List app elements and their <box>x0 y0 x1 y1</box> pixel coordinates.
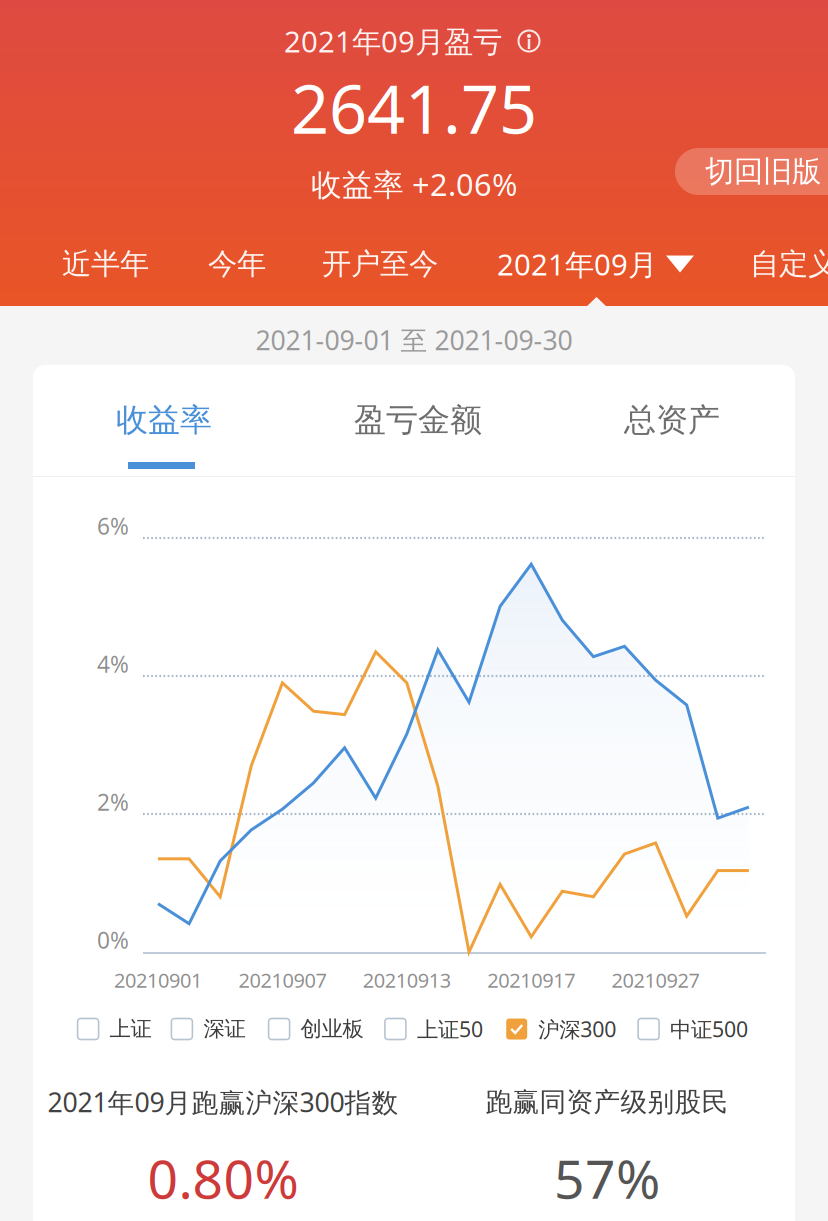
staticText: 2021年09月 <box>497 244 657 283</box>
staticText: 切回旧版 <box>705 153 821 189</box>
button[interactable]: 切回旧版 <box>675 148 828 195</box>
staticText: 上证50 <box>417 1015 483 1043</box>
button[interactable]: 近半年 <box>62 233 149 295</box>
staticText: 2021-09-01 至 2021-09-30 <box>255 322 572 358</box>
button[interactable]: 盈亏金额 <box>287 365 541 477</box>
staticText: 开户至今 <box>322 246 438 282</box>
button[interactable]: 今年 <box>208 233 266 295</box>
staticText: 2021年09月跑赢沪深300指数 <box>47 1084 398 1120</box>
button[interactable]: 开户至今 <box>322 233 438 295</box>
button[interactable]: 沪深300 <box>506 1009 616 1049</box>
staticText: 57% <box>554 1143 660 1213</box>
staticText: 自定义 <box>750 246 828 282</box>
staticText: 沪深300 <box>538 1015 616 1043</box>
staticText: 近半年 <box>62 246 149 282</box>
staticText: 总资产 <box>624 400 720 440</box>
staticText: 收益率 <box>116 400 212 440</box>
button[interactable]: 收益率 <box>33 365 287 477</box>
staticText: 0% <box>97 925 129 955</box>
staticText: 6% <box>97 511 129 541</box>
staticText: 4% <box>97 649 129 679</box>
staticText: 20210927 <box>612 967 700 993</box>
button[interactable]: 深证 <box>171 1009 245 1049</box>
staticText: 2021年09月盈亏 <box>284 21 502 60</box>
button[interactable]: 总资产 <box>541 365 795 477</box>
button[interactable]: 自定义 <box>750 233 828 295</box>
staticText: 中证500 <box>670 1015 748 1043</box>
staticText: 2641.75 <box>291 64 537 152</box>
staticText: 创业板 <box>301 1016 364 1042</box>
staticText: 跑赢同资产级别股民 <box>485 1086 728 1118</box>
staticText: 20210917 <box>487 967 575 993</box>
staticText: 20210907 <box>238 967 326 993</box>
staticText: 上证 <box>110 1016 152 1042</box>
button[interactable]: 中证500 <box>638 1009 748 1049</box>
staticText: 20210913 <box>363 967 451 993</box>
staticText: 0.80% <box>147 1143 298 1213</box>
staticText: 今年 <box>208 246 266 282</box>
staticText: 2% <box>97 787 129 817</box>
button[interactable]: 上证50 <box>385 1009 483 1049</box>
staticText: 20210901 <box>114 967 202 993</box>
button[interactable]: 上证 <box>78 1009 152 1049</box>
button[interactable]: 2021年09月 <box>497 233 694 295</box>
staticText: 收益率 +2.06% <box>311 164 517 204</box>
staticText: 深证 <box>203 1016 245 1042</box>
button[interactable]: 创业板 <box>269 1009 364 1049</box>
staticText: 盈亏金额 <box>354 400 482 440</box>
